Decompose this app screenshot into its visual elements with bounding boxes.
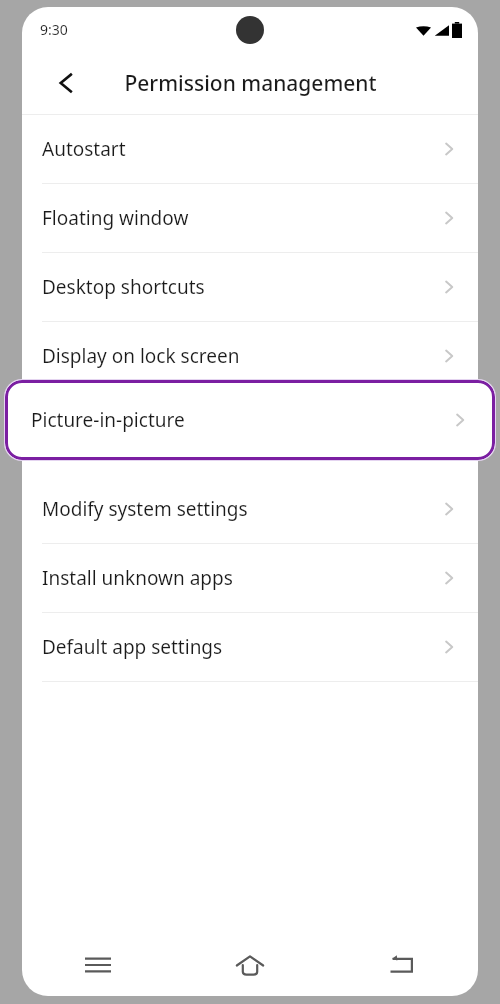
button[interactable]: Back [46, 63, 86, 103]
button[interactable]: Autostart [22, 115, 478, 183]
button[interactable]: Modify system settings [22, 475, 478, 543]
staticText: Floating window [42, 205, 189, 231]
button[interactable]: Home [174, 934, 326, 996]
button[interactable]: Floating window [22, 184, 478, 252]
button[interactable]: Recent apps [22, 934, 174, 996]
button[interactable]: Picture-in-picture [5, 380, 495, 460]
staticText: 9:30 [40, 20, 68, 39]
staticText: Autostart [42, 136, 126, 162]
staticText: Modify system settings [42, 496, 248, 522]
staticText: Default app settings [42, 634, 223, 660]
staticText: Desktop shortcuts [42, 274, 205, 300]
button[interactable]: Install unknown apps [22, 544, 478, 612]
button[interactable]: Desktop shortcuts [22, 253, 478, 321]
staticText: Permission management [124, 69, 377, 98]
button[interactable]: Default app settings [22, 613, 478, 681]
button[interactable]: Display on lock screen [22, 322, 478, 390]
staticText: Picture-in-picture [31, 407, 185, 433]
staticText: Display on lock screen [42, 343, 240, 369]
button[interactable]: Back [326, 934, 478, 996]
staticText: Install unknown apps [42, 565, 233, 591]
